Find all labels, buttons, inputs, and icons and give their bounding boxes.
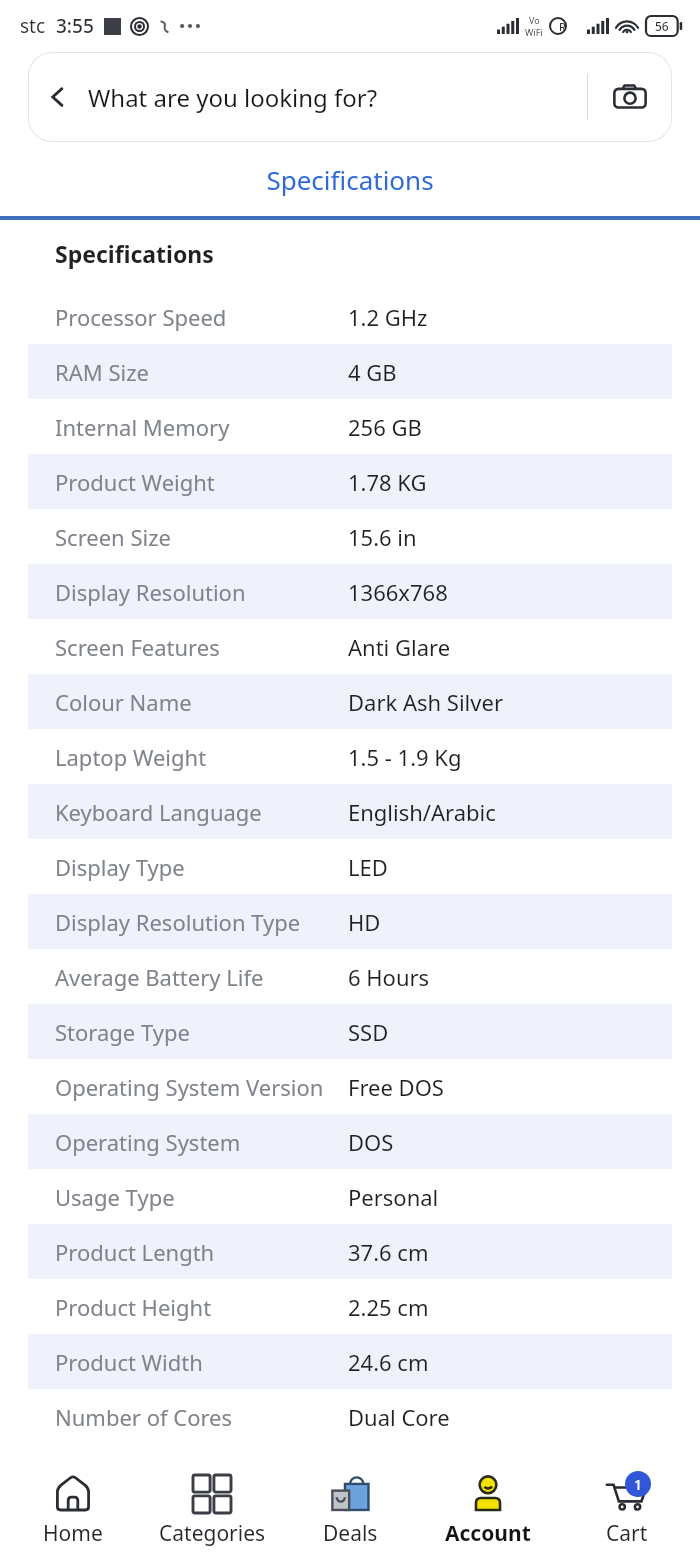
staticText: Laptop Weight — [55, 742, 348, 772]
staticText: Home — [43, 1519, 103, 1548]
staticText: R — [559, 19, 566, 34]
button[interactable]: Processor Speed — [28, 289, 672, 344]
staticText: 1366x768 — [348, 577, 448, 607]
staticText: Deals — [323, 1519, 378, 1548]
button[interactable]: Home — [8, 1471, 138, 1548]
button[interactable]: Specifications — [0, 142, 700, 216]
button[interactable]: Screen Size — [28, 509, 672, 564]
staticText: stc — [20, 13, 46, 39]
button[interactable]: Laptop Weight — [28, 729, 672, 784]
staticText: Specifications — [55, 238, 214, 269]
staticText: Internal Memory — [55, 412, 348, 442]
staticText: 1.2 GHz — [348, 302, 428, 332]
staticText: Colour Name — [55, 687, 348, 717]
staticText: 37.6 cm — [348, 1237, 429, 1267]
staticText: HD — [348, 907, 381, 937]
staticText: Cart — [606, 1519, 648, 1548]
staticText: 2.25 cm — [348, 1292, 429, 1322]
staticText: Display Type — [55, 852, 348, 882]
button[interactable]: Product Length — [28, 1224, 672, 1279]
button[interactable]: Display Type — [28, 839, 672, 894]
staticText: Anti Glare — [348, 632, 451, 662]
button[interactable]: Account — [423, 1471, 553, 1548]
staticText: Product Weight — [55, 467, 348, 497]
staticText: Product Height — [55, 1292, 348, 1322]
staticText: 56 — [655, 18, 669, 34]
staticText: WiFi — [525, 26, 543, 38]
staticText: Screen Size — [55, 522, 348, 552]
staticText: Product Length — [55, 1237, 348, 1267]
button[interactable]: Display Resolution Type — [28, 894, 672, 949]
staticText: Display Resolution Type — [55, 907, 348, 937]
staticText: RAM Size — [55, 357, 348, 387]
staticText: 3:55 — [56, 13, 94, 39]
staticText: Average Battery Life — [55, 962, 348, 992]
button[interactable]: Number of Cores — [28, 1389, 672, 1444]
staticText: 15.6 in — [348, 522, 417, 552]
staticText: Dual Core — [348, 1402, 450, 1432]
staticText: Storage Type — [55, 1017, 348, 1047]
button[interactable]: Back — [28, 52, 672, 142]
button[interactable]: Internal Memory — [28, 399, 672, 454]
button[interactable]: RAM Size — [28, 344, 672, 399]
staticText: Account — [445, 1519, 531, 1548]
button[interactable]: Operating System Version — [28, 1059, 672, 1114]
staticText: Personal — [348, 1182, 439, 1212]
button[interactable]: Search by camera — [588, 52, 672, 142]
button[interactable]: Deals — [285, 1471, 415, 1548]
staticText: SSD — [348, 1017, 389, 1047]
button[interactable]: Product Width — [28, 1334, 672, 1389]
staticText: Number of Cores — [55, 1402, 348, 1432]
button[interactable]: 1 — [562, 1471, 692, 1548]
staticText: Product Width — [55, 1347, 348, 1377]
staticText: 256 GB — [348, 412, 422, 442]
staticText: Keyboard Language — [55, 797, 348, 827]
button[interactable]: Storage Type — [28, 1004, 672, 1059]
staticText: 4 GB — [348, 357, 397, 387]
staticText: DOS — [348, 1127, 394, 1157]
staticText: LED — [348, 852, 388, 882]
staticText: Specifications — [266, 162, 434, 197]
staticText: 1.78 KG — [348, 467, 427, 497]
staticText: Free DOS — [348, 1072, 444, 1102]
button[interactable]: Back — [28, 52, 88, 142]
staticText: Vo — [529, 14, 540, 26]
staticText: 24.6 cm — [348, 1347, 429, 1377]
button[interactable]: Operating System — [28, 1114, 672, 1169]
staticText: Operating System Version — [55, 1072, 348, 1102]
staticText: 1 — [634, 1475, 643, 1494]
staticText: Processor Speed — [55, 302, 348, 332]
staticText: Display Resolution — [55, 577, 348, 607]
staticText: Categories — [159, 1519, 266, 1548]
button[interactable]: Average Battery Life — [28, 949, 672, 1004]
staticText: Dark Ash Silver — [348, 687, 503, 717]
button[interactable]: Product Height — [28, 1279, 672, 1334]
staticText: 1.5 - 1.9 Kg — [348, 742, 462, 772]
staticText: What are you looking for? — [88, 81, 587, 114]
staticText: Operating System — [55, 1127, 348, 1157]
button[interactable]: Product Weight — [28, 454, 672, 509]
button[interactable]: Colour Name — [28, 674, 672, 729]
button[interactable]: Display Resolution — [28, 564, 672, 619]
button[interactable]: Usage Type — [28, 1169, 672, 1224]
button[interactable]: Categories — [147, 1471, 277, 1548]
staticText: English/Arabic — [348, 797, 496, 827]
staticText: Usage Type — [55, 1182, 348, 1212]
button[interactable]: Screen Features — [28, 619, 672, 674]
staticText: Screen Features — [55, 632, 348, 662]
button[interactable]: Keyboard Language — [28, 784, 672, 839]
staticText: 6 Hours — [348, 962, 430, 992]
